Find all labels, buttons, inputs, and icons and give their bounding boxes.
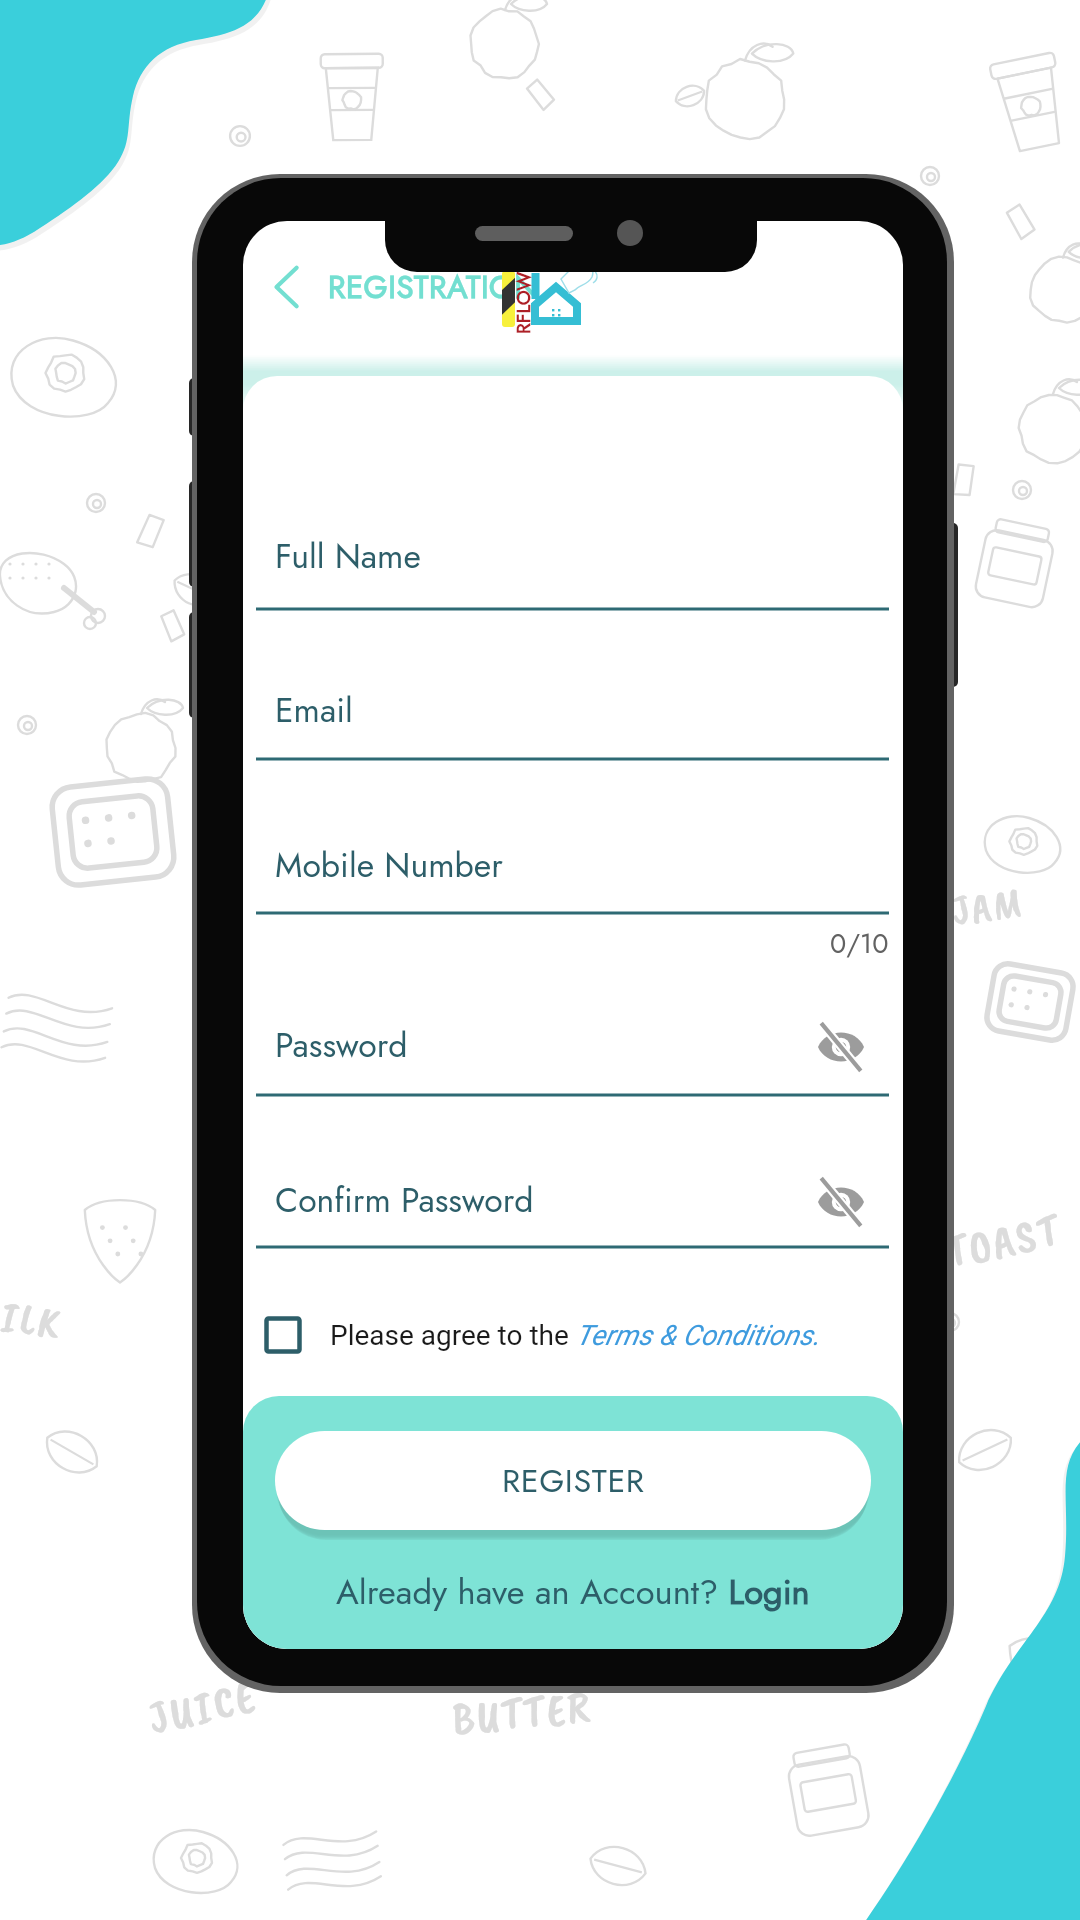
staticText: Confirm Password bbox=[275, 1176, 534, 1225]
staticText: RFLOWED bbox=[510, 247, 532, 334]
button[interactable]: Mobile Number bbox=[243, 830, 903, 916]
button[interactable]: Email bbox=[243, 675, 903, 762]
button[interactable]: Please agree to the Terms & Conditions. bbox=[264, 1310, 820, 1360]
staticText: Mobile Number bbox=[275, 841, 503, 890]
staticText: Please agree to the Terms & Conditions. bbox=[330, 1319, 820, 1352]
button[interactable]: Toggle password visibility bbox=[813, 1174, 869, 1230]
button[interactable]: Password bbox=[243, 1010, 903, 1098]
staticText: BUTTER bbox=[450, 1678, 594, 1748]
staticText: JUICE bbox=[143, 1666, 262, 1747]
button[interactable]: Already have an Account? Login bbox=[336, 1567, 810, 1617]
staticText: Already have an Account? Login bbox=[336, 1567, 810, 1617]
staticText: JAM bbox=[949, 875, 1027, 938]
button[interactable]: Full Name bbox=[243, 521, 903, 612]
staticText: Password bbox=[275, 1021, 408, 1070]
staticText: TOAST bbox=[940, 1200, 1067, 1282]
button[interactable]: Back bbox=[258, 259, 314, 315]
button[interactable]: REGISTER bbox=[275, 1431, 871, 1530]
staticText: 0/10 bbox=[830, 924, 889, 963]
staticText: Email bbox=[275, 686, 353, 735]
staticText: Full Name bbox=[275, 532, 421, 581]
staticText: REGISTRATION bbox=[328, 265, 539, 310]
button[interactable]: Toggle password visibility bbox=[813, 1019, 869, 1075]
staticText: REGISTER bbox=[502, 1457, 645, 1504]
button[interactable]: Confirm Password bbox=[243, 1165, 903, 1250]
staticText: MILK bbox=[0, 1284, 66, 1351]
